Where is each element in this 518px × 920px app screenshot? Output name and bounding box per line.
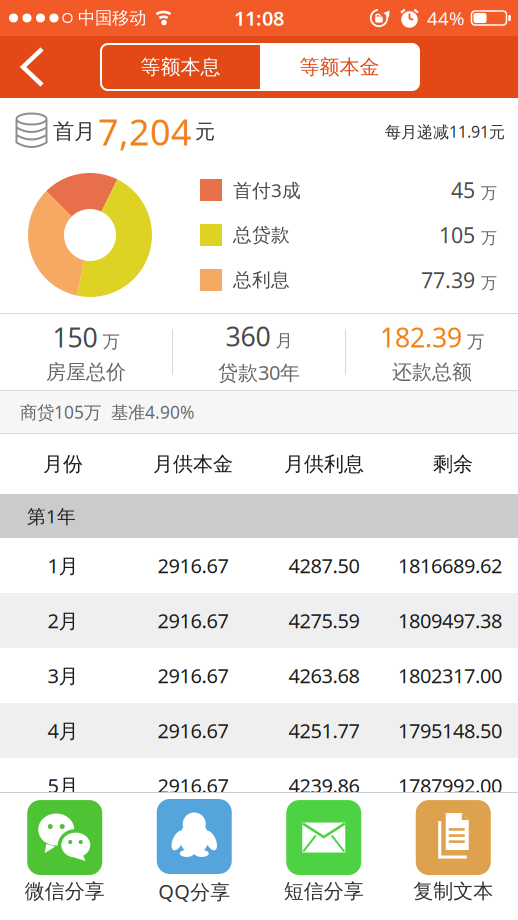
staticText: 45 — [451, 176, 475, 204]
staticText: 总利息 — [233, 268, 290, 291]
button[interactable]: 微信分享 — [0, 800, 129, 904]
staticText: 第1年 — [27, 504, 76, 528]
staticText: 7,204 — [98, 108, 192, 155]
staticText: 万 — [467, 331, 484, 352]
staticText: 1月 — [47, 552, 78, 579]
staticText: 150 — [52, 319, 97, 355]
staticText: 2916.67 — [157, 717, 228, 744]
staticText: 4263.68 — [288, 662, 359, 689]
staticText: 2916.67 — [157, 772, 228, 799]
button[interactable]: Back — [18, 46, 46, 88]
staticText: 1787992.00 — [398, 772, 502, 799]
staticText: 1816689.62 — [398, 552, 502, 579]
staticText: 首付3成 — [233, 178, 301, 202]
staticText: 万 — [481, 183, 497, 203]
staticText: 1795148.50 — [398, 717, 502, 744]
staticText: 2916.67 — [157, 552, 228, 579]
button[interactable]: 等额本息 — [101, 44, 260, 90]
staticText: 44% — [427, 6, 465, 30]
staticText: 1809497.38 — [398, 607, 502, 634]
staticText: 2916.67 — [157, 662, 228, 689]
staticText: 1802317.00 — [398, 662, 502, 689]
staticText: 4251.77 — [288, 717, 359, 744]
staticText: 月 — [275, 330, 292, 351]
button[interactable]: 等额本金 — [260, 44, 419, 90]
staticText: 中国移动 — [78, 7, 146, 29]
staticText: 复制文本 — [413, 879, 493, 904]
staticText: 182.39 — [380, 319, 462, 355]
staticText: 月供本金 — [153, 452, 233, 476]
button[interactable]: 短信分享 — [259, 800, 388, 904]
staticText: 元 — [195, 119, 215, 144]
staticText: 还款总额 — [392, 360, 472, 384]
staticText: 万 — [102, 331, 119, 352]
button[interactable]: QQ分享 — [129, 799, 259, 905]
staticText: 每月递减11.91元 — [385, 121, 505, 142]
staticText: 万 — [481, 228, 497, 248]
staticText: 万 — [481, 273, 497, 293]
staticText: 首月 — [53, 118, 95, 145]
staticText: 2916.67 — [157, 607, 228, 634]
staticText: 总贷款 — [233, 223, 290, 246]
staticText: 房屋总价 — [46, 360, 126, 384]
staticText: 3月 — [47, 662, 78, 689]
staticText: 商贷105万 基准4.90% — [20, 400, 194, 423]
button[interactable]: 复制文本 — [388, 800, 518, 904]
staticText: 等额本金 — [299, 55, 379, 79]
staticText: 4287.50 — [288, 552, 359, 579]
staticText: 贷款30年 — [218, 359, 300, 385]
staticText: QQ分享 — [158, 878, 230, 905]
staticText: 4月 — [47, 717, 78, 744]
staticText: 5月 — [47, 772, 78, 799]
staticText: 4275.59 — [288, 607, 359, 634]
staticText: 微信分享 — [25, 879, 105, 904]
staticText: 2月 — [47, 607, 78, 634]
staticText: 剩余 — [433, 452, 473, 476]
staticText: 77.39 — [421, 266, 475, 294]
staticText: 月份 — [43, 452, 83, 476]
staticText: 等额本息 — [140, 55, 220, 79]
staticText: 11:08 — [234, 5, 284, 31]
staticText: 短信分享 — [284, 879, 364, 904]
staticText: 105 — [439, 221, 475, 249]
staticText: 4239.86 — [288, 772, 359, 799]
staticText: 360 — [225, 318, 270, 354]
staticText: 月供利息 — [284, 452, 364, 476]
